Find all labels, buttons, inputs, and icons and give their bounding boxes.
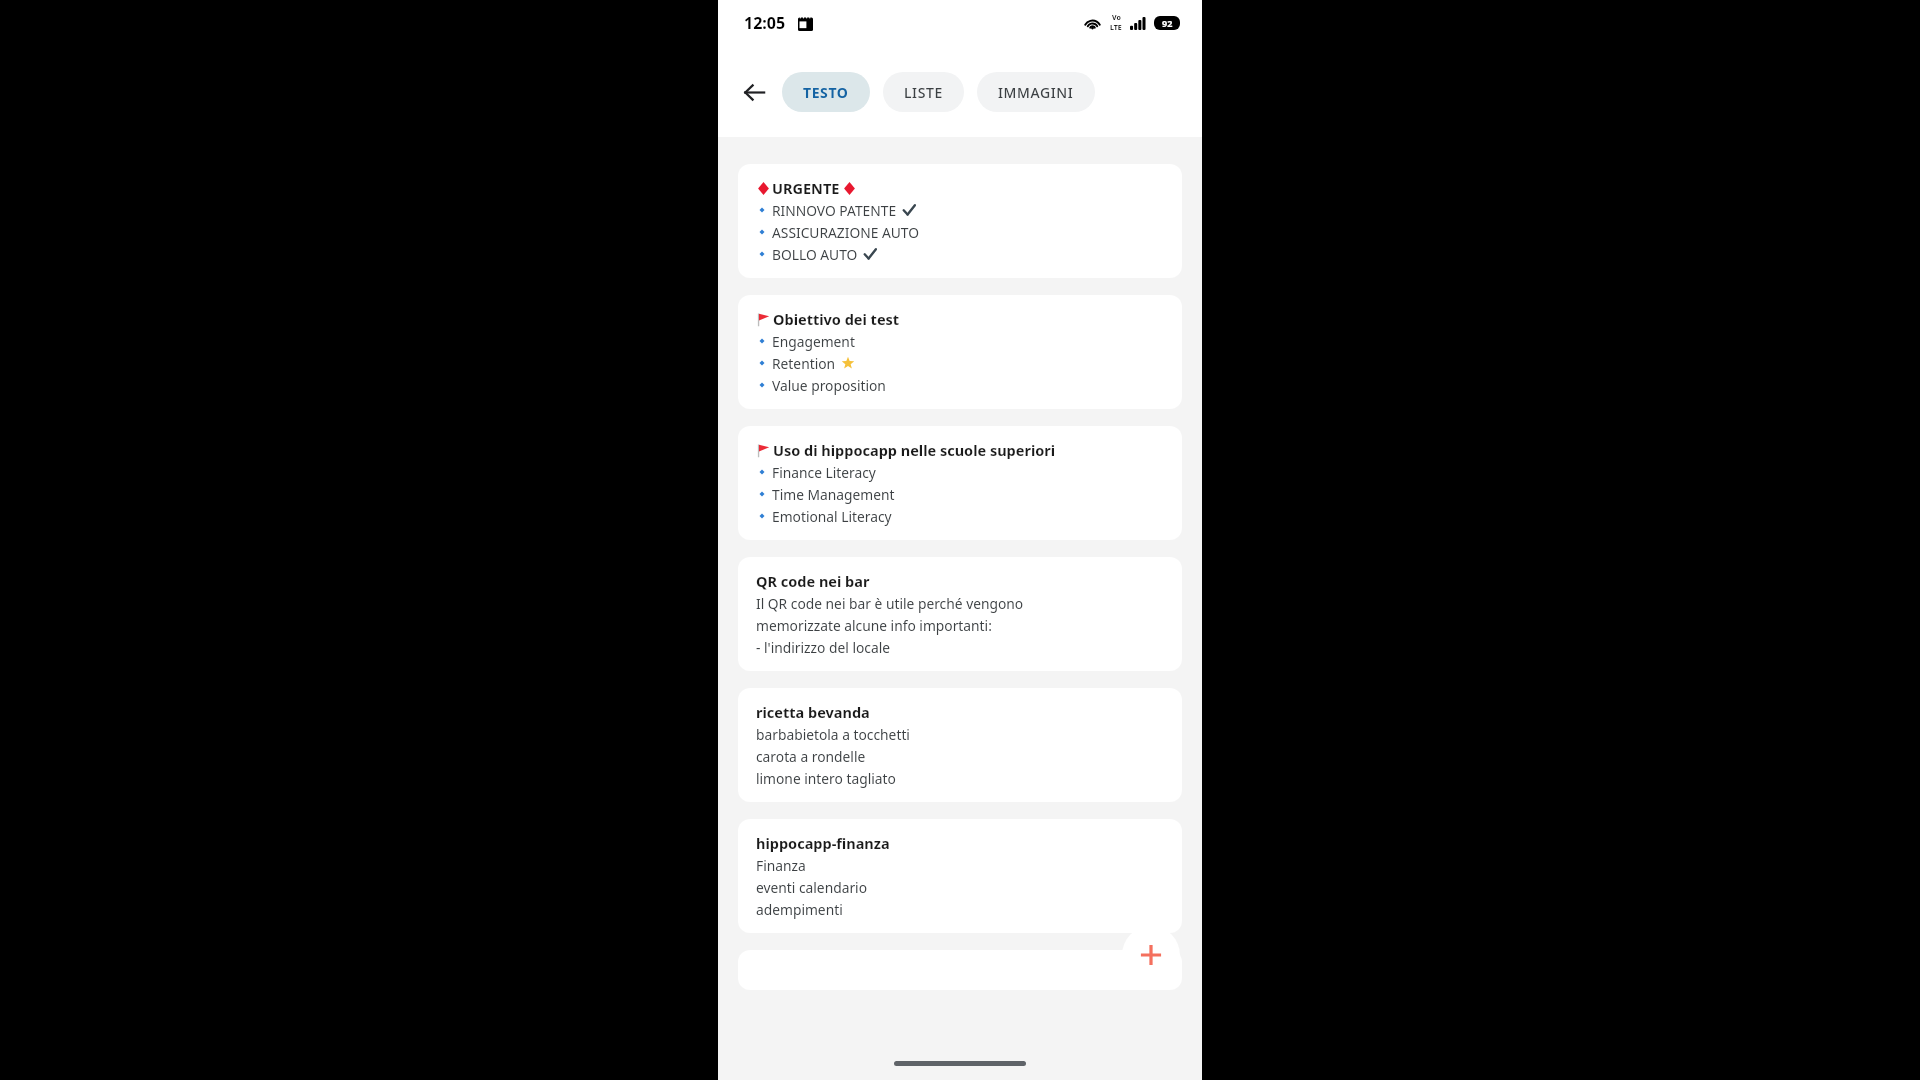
staticText: Retention xyxy=(772,354,836,373)
button[interactable]: hippocapp-finanza xyxy=(738,819,1182,933)
staticText: memorizzate alcune info importanti: xyxy=(756,616,992,635)
staticText: Emotional Literacy xyxy=(772,507,892,526)
button[interactable]: ricetta bevanda xyxy=(738,688,1182,802)
staticText: Value proposition xyxy=(772,376,886,395)
staticText: limone intero tagliato xyxy=(756,769,896,788)
staticText: TESTO xyxy=(803,83,849,102)
staticText: 92 xyxy=(1162,17,1173,29)
button[interactable]: Obiettivo dei test xyxy=(738,295,1182,409)
staticText: Finance Literacy xyxy=(772,463,876,482)
staticText: QR code nei bar xyxy=(756,571,870,591)
staticText: IMMAGINI xyxy=(998,83,1074,102)
staticText: ASSICURAZIONE AUTO xyxy=(772,223,920,242)
staticText: hippocapp-finanza xyxy=(756,833,890,853)
staticText: Vo xyxy=(1112,13,1121,23)
staticText: eventi calendario xyxy=(756,878,868,897)
staticText: Finanza xyxy=(756,856,806,875)
staticText: Obiettivo dei test xyxy=(773,309,900,329)
button[interactable]: IMMAGINI xyxy=(977,72,1095,112)
staticText: Uso di hippocapp nelle scuole superiori xyxy=(773,440,1056,460)
staticText: RINNOVO PATENTE xyxy=(772,201,897,220)
staticText: carota a rondelle xyxy=(756,747,866,766)
button[interactable]: TESTO xyxy=(782,72,870,112)
staticText: URGENTE xyxy=(772,178,840,198)
staticText: Engagement xyxy=(772,332,855,351)
button[interactable]: URGENTE xyxy=(738,164,1182,278)
staticText: Il QR code nei bar è utile perché vengon… xyxy=(756,594,1024,613)
staticText: LISTE xyxy=(904,83,943,102)
staticText: barbabietola a tocchetti xyxy=(756,725,910,744)
button[interactable]: LISTE xyxy=(883,72,964,112)
button[interactable]: QR code nei bar xyxy=(738,557,1182,671)
staticText: adempimenti xyxy=(756,900,843,919)
staticText: ricetta bevanda xyxy=(756,702,870,722)
staticText: BOLLO AUTO xyxy=(772,245,858,264)
staticText: 12:05 xyxy=(744,12,786,34)
staticText: - l'indirizzo del locale xyxy=(756,638,891,657)
staticText: LTE xyxy=(1110,23,1122,33)
button[interactable]: Uso di hippocapp nelle scuole superiori xyxy=(738,426,1182,540)
staticText: Time Management xyxy=(772,485,895,504)
button[interactable]: Add note xyxy=(1122,926,1180,984)
button[interactable] xyxy=(738,950,1182,990)
button[interactable]: Back xyxy=(732,70,776,114)
